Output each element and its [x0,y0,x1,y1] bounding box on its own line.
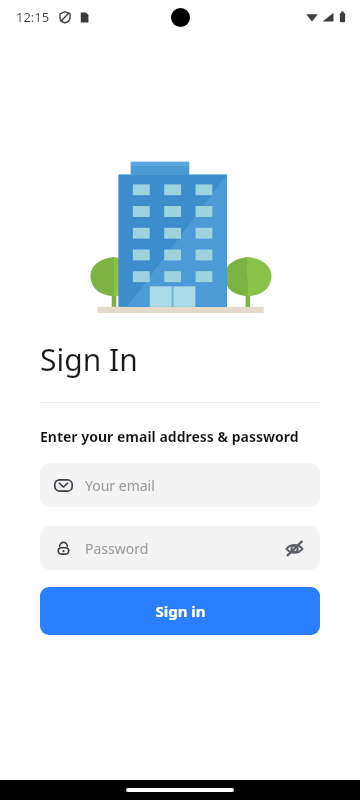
staticText: Your email [85,476,155,495]
button[interactable]: Show password [280,534,308,562]
button[interactable]: Sign in [40,587,320,635]
staticText: Password [85,539,280,558]
staticText: Sign In [40,339,138,380]
staticText: Sign in [155,601,206,621]
button[interactable]: Password [40,526,320,570]
staticText: 12:15 [16,8,50,26]
button[interactable]: Your email [40,463,320,507]
staticText: Enter your email address & password [40,427,299,446]
